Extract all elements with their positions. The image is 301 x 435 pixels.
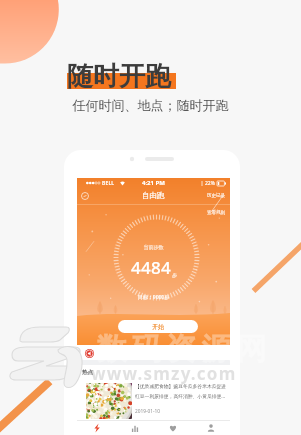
staticText: 4484 [131, 256, 172, 279]
staticText: 目标：9000步 [77, 294, 230, 301]
staticText: 开始 [152, 323, 164, 331]
staticText: 22% [205, 180, 215, 187]
staticText: 自由跑 [142, 191, 165, 200]
staticText: 4:21 PM [142, 179, 165, 187]
staticText: 当前步数 [77, 244, 230, 250]
staticText: 热点 [82, 369, 93, 376]
staticText: www.smzy.com [91, 362, 237, 385]
button[interactable]: Health [154, 421, 192, 435]
button[interactable]: Stats [116, 421, 154, 435]
button[interactable]: Run [77, 421, 116, 435]
staticText: 数码资源网 [94, 330, 269, 368]
staticText: BELL [102, 180, 115, 187]
staticText: 【优质减肥食物】豌豆冬瓜多谷米木瓜促进 [135, 383, 227, 389]
staticText: 随时开跑 [67, 60, 171, 93]
button[interactable]: 查看规则 [207, 210, 225, 216]
button[interactable]: 开始 [118, 320, 198, 333]
staticText: 步 [172, 272, 177, 278]
staticText: 红豆一利尿排便，高纤消肿、小黄瓜排便… [135, 393, 226, 400]
staticText: 2019-01-10 [135, 408, 161, 415]
button[interactable]: 历史记录 [207, 193, 225, 199]
staticText: 任何时间、地点；随时开跑 [0, 97, 301, 113]
button[interactable]: Profile [81, 192, 89, 200]
button[interactable]: Announcement [85, 349, 94, 358]
button[interactable]: Me [192, 421, 230, 435]
button[interactable]: 【优质减肥食物】豌豆冬瓜多谷米木瓜促进 [86, 383, 229, 419]
